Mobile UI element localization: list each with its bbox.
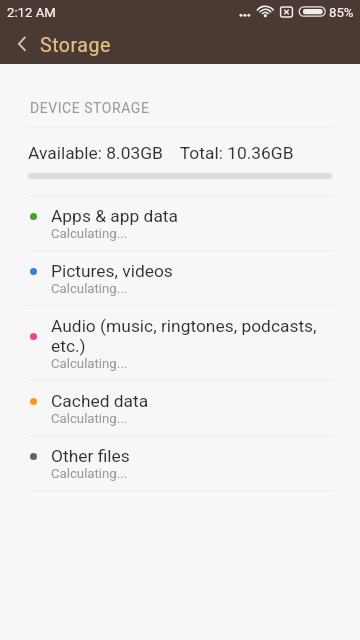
staticText: Storage [40,34,111,57]
staticText: Other files [51,446,130,466]
staticText: Calculating... [51,281,128,296]
staticText: Audio (music, ringtones, podcasts, etc.) [51,316,332,356]
staticText: 85% [329,5,354,20]
staticText: Cached data [51,391,149,411]
staticText: Apps & app data [51,206,179,226]
staticText: Calculating... [51,411,128,426]
button[interactable]: Audio (music, ringtones, podcasts, etc.) [0,306,360,380]
button[interactable]: Apps & app data [0,196,360,250]
staticText: Calculating... [51,356,128,371]
staticText: Calculating... [51,226,128,241]
button[interactable]: Back [0,24,40,64]
staticText: Available: 8.03GB Total: 10.36GB [28,143,294,163]
button[interactable]: Cached data [0,381,360,435]
staticText: Pictures, videos [51,261,173,281]
button[interactable]: Pictures, videos [0,251,360,305]
button[interactable]: Other files [0,436,360,490]
staticText: 2:12 AM [7,5,56,20]
staticText: DEVICE STORAGE [30,100,150,116]
staticText: Calculating... [51,466,128,481]
